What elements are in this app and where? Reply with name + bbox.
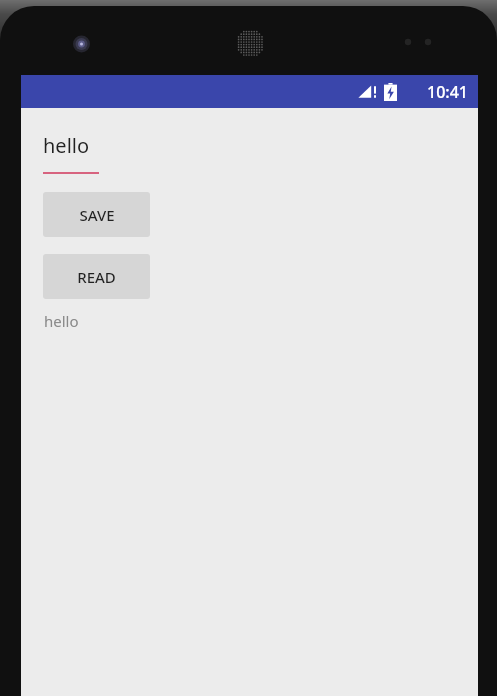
staticText: SAVE: [79, 205, 115, 225]
button[interactable]: SAVE: [43, 192, 150, 237]
staticText: READ: [77, 267, 116, 287]
staticText: hello: [43, 132, 90, 159]
staticText: 10:41: [427, 81, 468, 103]
button[interactable]: READ: [43, 254, 150, 299]
button[interactable]: hello: [43, 132, 153, 174]
staticText: hello: [44, 311, 79, 331]
